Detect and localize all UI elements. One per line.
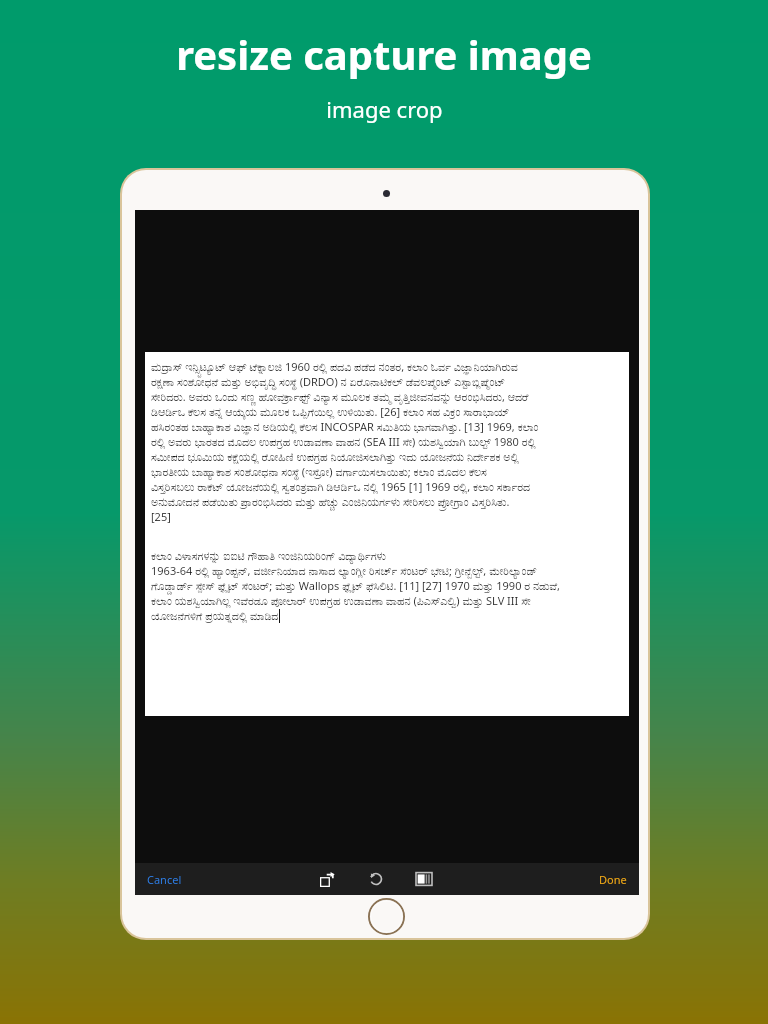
- staticText: [25]: [151, 509, 171, 524]
- staticText: Cancel: [147, 872, 182, 887]
- staticText: ಯೋಜನೆಗಳಿಗೆ ಪ್ರಯತ್ನದಲ್ಲಿ ಮಾಡಿದ: [151, 608, 279, 623]
- button[interactable]: Home: [367, 897, 406, 936]
- staticText: ಸಮೀಪದ ಭೂಮಿಯ ಕಕ್ಷೆಯಲ್ಲಿ ರೋಹಿಣಿ ಉಪಗ್ರಹ ನಿಯ…: [151, 449, 519, 464]
- staticText: ರಕ್ಷಣಾ ಸಂಶೋಧನೆ ಮತ್ತು ಅಭಿವೃದ್ಧಿ ಸಂಸ್ಥೆ (D…: [151, 374, 506, 389]
- button[interactable]: Aspect ratio: [411, 866, 437, 892]
- staticText: 1963-64 ರಲ್ಲಿ ಹ್ಯಾಂಪ್ಟನ್, ವರ್ಜೀನಿಯಾದ ನಾಸ…: [151, 563, 538, 578]
- staticText: Done: [599, 872, 627, 887]
- staticText: ರಲ್ಲಿ ಅವರು ಭಾರತದ ಮೊದಲ ಉಪಗ್ರಹ ಉಡಾವಣಾ ವಾಹನ…: [151, 434, 536, 449]
- button[interactable]: Cancel: [135, 866, 194, 893]
- staticText: ಸೇರಿದರು. ಅವರು ಒಂದು ಸಣ್ಣ ಹೋವರ್ಕ್ರಾಫ್ಟ್ ವಿ…: [151, 389, 529, 404]
- button[interactable]: Done: [587, 866, 639, 893]
- staticText: ವಿಸ್ತರಿಸಬಲು ರಾಕೆಟ್ ಯೋಜನೆಯಲ್ಲಿ ಸ್ವತಂತ್ರವಾ…: [151, 479, 531, 494]
- staticText: ಗೊಡ್ಡಾರ್ಡ್ ಸ್ಪೇಸ್ ಫ್ಲೈಟ್ ಸೆಂಟರ್; ಮತ್ತು W…: [151, 578, 561, 593]
- staticText: ಕಲಾಂ ಯಶಸ್ವಿಯಾಗಿಲ್ಲ ಇವೆರಡೂ ಪೋಲಾರ್ ಉಪಗ್ರಹ …: [151, 593, 531, 608]
- staticText: image crop: [326, 94, 443, 124]
- button[interactable]: Rotate: [315, 866, 341, 892]
- staticText: ಕಲಾಂ ವಿಳಾಸಗಳನ್ನು ಐಐಟಿ ಗೌಹಾತಿ ಇಂಜಿನಿಯರಿಂಗ…: [151, 548, 387, 563]
- staticText: resize capture image: [176, 27, 592, 81]
- staticText: ಭಾರತೀಯ ಬಾಹ್ಯಾಕಾಶ ಸಂಶೋಧನಾ ಸಂಸ್ಥೆ (ಇಸ್ರೋ) …: [151, 464, 487, 479]
- staticText: ಡಿಆರ್ಡಿಒ ಕೆಲಸ ತನ್ನ ಆಯ್ಕೆಯ ಮೂಲಕ ಒಪ್ಪಿಗೆಯಿ…: [151, 404, 510, 419]
- staticText: ಮದ್ರಾಸ್ ಇನ್ಸ್ಟಿಟ್ಯೂಟ್ ಆಫ್ ಟೆಕ್ನಾಲಜಿ 1960…: [151, 359, 518, 374]
- button[interactable]: Reset: [363, 866, 389, 892]
- staticText: ಹಸಿರಂತಹ ಬಾಹ್ಯಾಕಾಶ ವಿಜ್ಞಾನ ಅಡಿಯಲ್ಲಿ ಕೆಲಸ …: [151, 419, 539, 434]
- staticText: ಅನುಮೋದನೆ ಪಡೆಯಿತು ಪ್ರಾರಂಭಿಸಿದರು ಮತ್ತು ಹೆಚ…: [151, 494, 510, 509]
